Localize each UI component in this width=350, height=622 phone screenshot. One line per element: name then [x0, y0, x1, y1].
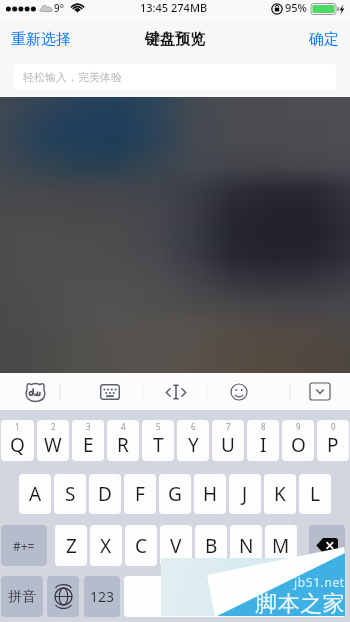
- button[interactable]: J: [229, 474, 261, 514]
- staticText: C: [135, 533, 148, 559]
- staticText: 重新选择: [11, 30, 71, 49]
- button[interactable]: 4: [107, 420, 139, 461]
- staticText: jb51.net: [294, 574, 345, 590]
- button[interactable]: M: [265, 525, 297, 566]
- button[interactable]: 7: [212, 420, 244, 461]
- staticText: 3: [86, 421, 91, 432]
- staticText: 脚本之家: [255, 590, 345, 618]
- staticText: #+=: [13, 538, 35, 554]
- staticText: 13:45 274MB: [140, 0, 208, 15]
- button[interactable]: 0: [317, 420, 349, 461]
- staticText: J: [242, 481, 248, 507]
- button[interactable]: Emoji: [208, 373, 270, 410]
- staticText: G: [168, 481, 182, 507]
- staticText: 9°: [54, 1, 64, 15]
- staticText: B: [205, 533, 218, 559]
- staticText: 4: [121, 421, 126, 432]
- button[interactable]: 重新选择: [11, 30, 71, 49]
- staticText: T: [153, 432, 164, 458]
- button[interactable]: A: [19, 474, 51, 514]
- button[interactable]: 1: [1, 420, 34, 461]
- button[interactable]: #+=: [1, 525, 47, 566]
- button[interactable]: Space: [124, 576, 346, 617]
- staticText: Q: [10, 432, 25, 458]
- staticText: D: [98, 481, 112, 507]
- staticText: 拼音: [8, 588, 36, 606]
- staticText: 轻松输入，完美体验: [23, 70, 122, 84]
- staticText: A: [29, 481, 42, 507]
- button[interactable]: 5: [142, 420, 174, 461]
- button[interactable]: L: [299, 474, 331, 514]
- staticText: 7: [226, 421, 231, 432]
- staticText: O: [291, 432, 306, 458]
- staticText: N: [239, 533, 254, 559]
- button[interactable]: Switch language: [47, 576, 79, 617]
- staticText: 5: [156, 421, 161, 432]
- button[interactable]: 2: [37, 420, 69, 461]
- button[interactable]: H: [194, 474, 226, 514]
- button[interactable]: 确定: [309, 30, 339, 49]
- staticText: W: [44, 432, 62, 458]
- button[interactable]: 6: [177, 420, 209, 461]
- button[interactable]: Backspace: [309, 525, 345, 566]
- staticText: 0: [331, 421, 336, 432]
- button[interactable]: Baidu input: [4, 373, 66, 410]
- staticText: Y: [188, 432, 199, 458]
- button[interactable]: 8: [247, 420, 279, 461]
- button[interactable]: F: [124, 474, 156, 514]
- button[interactable]: N: [230, 525, 262, 566]
- staticText: I: [260, 432, 267, 458]
- button[interactable]: K: [264, 474, 296, 514]
- button[interactable]: V: [160, 525, 192, 566]
- staticText: S: [65, 481, 76, 507]
- button[interactable]: 123: [84, 576, 120, 617]
- staticText: X: [100, 533, 112, 559]
- staticText: K: [274, 481, 286, 507]
- staticText: L: [310, 481, 320, 507]
- staticText: 2: [51, 421, 56, 432]
- button[interactable]: Z: [55, 525, 87, 566]
- staticText: 9: [296, 421, 301, 432]
- staticText: Z: [66, 533, 77, 559]
- button[interactable]: 3: [72, 420, 104, 461]
- button[interactable]: G: [159, 474, 191, 514]
- staticText: H: [203, 481, 218, 507]
- staticText: F: [135, 481, 145, 507]
- button[interactable]: 9: [282, 420, 314, 461]
- button[interactable]: 拼音: [1, 576, 43, 617]
- staticText: V: [170, 533, 182, 559]
- staticText: U: [221, 432, 235, 458]
- staticText: E: [83, 432, 94, 458]
- button[interactable]: S: [54, 474, 86, 514]
- button[interactable]: Move cursor: [145, 373, 207, 410]
- staticText: 123: [90, 587, 115, 606]
- button[interactable]: Keyboard: [79, 373, 141, 410]
- staticText: M: [272, 533, 290, 559]
- staticText: 1: [15, 421, 20, 432]
- button[interactable]: D: [89, 474, 121, 514]
- button[interactable]: C: [125, 525, 157, 566]
- staticText: 95%: [285, 0, 307, 15]
- button[interactable]: X: [90, 525, 122, 566]
- button[interactable]: Hide keyboard: [289, 373, 350, 410]
- staticText: P: [327, 432, 339, 458]
- staticText: R: [117, 432, 129, 458]
- button[interactable]: 轻松输入，完美体验: [14, 64, 336, 90]
- staticText: 键盘预览: [145, 30, 205, 49]
- staticText: 8: [261, 421, 266, 432]
- staticText: 确定: [309, 30, 339, 49]
- staticText: 6: [191, 421, 196, 432]
- button[interactable]: B: [195, 525, 227, 566]
